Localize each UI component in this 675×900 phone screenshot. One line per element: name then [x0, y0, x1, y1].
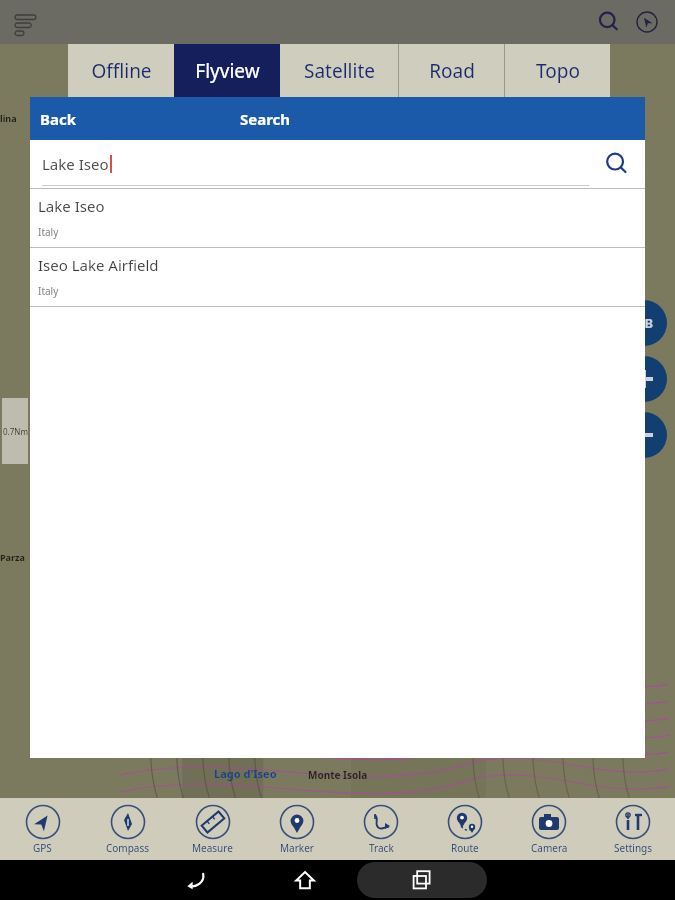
- button[interactable]: Menu: [4, 0, 48, 44]
- button[interactable]: Search: [589, 2, 629, 42]
- staticText: Camera: [531, 841, 568, 855]
- button[interactable]: Camera: [507, 798, 591, 860]
- button[interactable]: Route: [423, 798, 507, 860]
- staticText: Lake Iseo: [38, 196, 105, 216]
- staticText: Track: [369, 841, 394, 855]
- button[interactable]: Back: [171, 863, 223, 897]
- staticText: Offline: [91, 58, 152, 84]
- staticText: Monte Isola: [308, 768, 368, 782]
- staticText: Iseo Lake Airfield: [38, 255, 159, 275]
- button[interactable]: Locate me: [629, 4, 665, 40]
- button[interactable]: Zoom out: [621, 412, 667, 458]
- staticText: Route: [451, 841, 479, 855]
- staticText: Road: [429, 58, 475, 84]
- button[interactable]: Zoom in: [621, 356, 667, 402]
- button[interactable]: Iseo Lake Airfield: [30, 248, 645, 306]
- staticText: DB: [635, 314, 654, 332]
- button[interactable]: Recent apps: [357, 862, 487, 898]
- staticText: Lago d'Iseo: [214, 766, 277, 781]
- staticText: Compass: [106, 841, 150, 855]
- staticText: 0.7Nm: [3, 426, 28, 437]
- staticText: Parza: [0, 551, 25, 563]
- button[interactable]: GPS: [0, 798, 85, 860]
- staticText: Search: [240, 109, 291, 129]
- button[interactable]: Home: [279, 863, 331, 897]
- button[interactable]: Road: [399, 44, 504, 97]
- staticText: Flyview: [195, 58, 260, 84]
- staticText: Italy: [38, 284, 59, 298]
- staticText: lina: [0, 112, 17, 124]
- button[interactable]: Satellite: [280, 44, 398, 97]
- button[interactable]: Topo: [505, 44, 610, 97]
- staticText: GPS: [33, 841, 52, 855]
- button[interactable]: Flyview: [174, 44, 280, 97]
- button[interactable]: Offline: [68, 44, 174, 97]
- staticText: Back: [40, 109, 77, 129]
- button[interactable]: Settings: [591, 798, 675, 860]
- button[interactable]: Database: [621, 300, 667, 346]
- button[interactable]: Marker: [255, 798, 339, 860]
- button[interactable]: Measure: [170, 798, 255, 860]
- staticText: Italy: [38, 225, 59, 239]
- button[interactable]: Back: [40, 97, 77, 140]
- button[interactable]: Run search: [589, 140, 645, 188]
- button[interactable]: Compass: [85, 798, 170, 860]
- staticText: Lake Iseo: [42, 154, 109, 174]
- staticText: Satellite: [304, 58, 375, 84]
- staticText: Topo: [536, 58, 580, 84]
- staticText: Measure: [192, 841, 233, 855]
- staticText: Settings: [614, 841, 653, 855]
- button[interactable]: Lake Iseo: [30, 189, 645, 247]
- staticText: Marker: [280, 841, 314, 855]
- button[interactable]: Track: [339, 798, 423, 860]
